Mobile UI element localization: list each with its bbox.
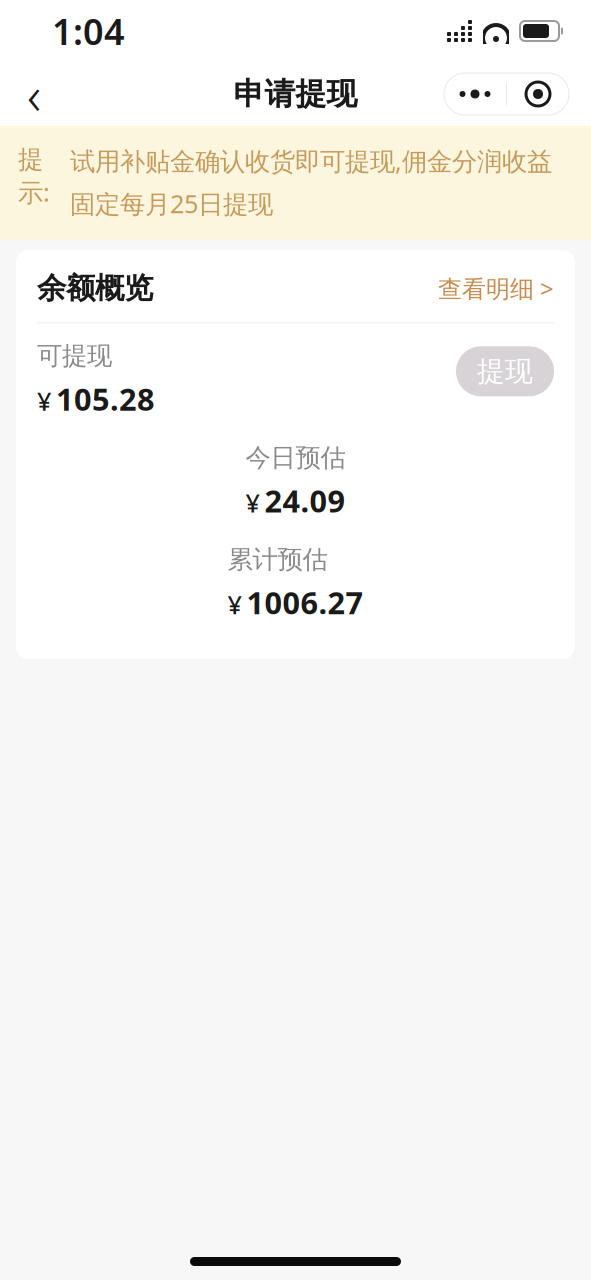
staticText: 1:04 bbox=[52, 7, 125, 55]
staticText: 105.28 bbox=[56, 378, 155, 419]
staticText: 可提现 bbox=[37, 340, 112, 371]
button[interactable]: Back bbox=[6, 66, 62, 122]
staticText: 试用补贴金确认收货即可提现,佣金分润收益固定每月25日提现 bbox=[70, 144, 552, 220]
staticText: 1006.27 bbox=[246, 582, 363, 623]
staticText: ¥ bbox=[227, 588, 241, 621]
staticText: 提示: bbox=[18, 144, 50, 209]
staticText: 余额概览 bbox=[37, 270, 153, 306]
staticText: 申请提现 bbox=[233, 75, 357, 113]
button[interactable]: More bbox=[444, 73, 506, 115]
staticText: ¥ bbox=[37, 384, 51, 418]
button[interactable]: 查看明细 > bbox=[438, 272, 554, 304]
staticText: 查看明细 > bbox=[438, 272, 554, 304]
staticText: 24.09 bbox=[264, 480, 345, 521]
staticText: 累计预估 bbox=[227, 544, 327, 575]
button[interactable]: 提现 bbox=[456, 346, 554, 396]
button[interactable]: Close bbox=[507, 73, 569, 115]
staticText: 今日预估 bbox=[245, 442, 345, 473]
staticText: ¥ bbox=[245, 486, 259, 519]
staticText: ‹ bbox=[27, 59, 41, 129]
staticText: 提现 bbox=[477, 354, 533, 388]
